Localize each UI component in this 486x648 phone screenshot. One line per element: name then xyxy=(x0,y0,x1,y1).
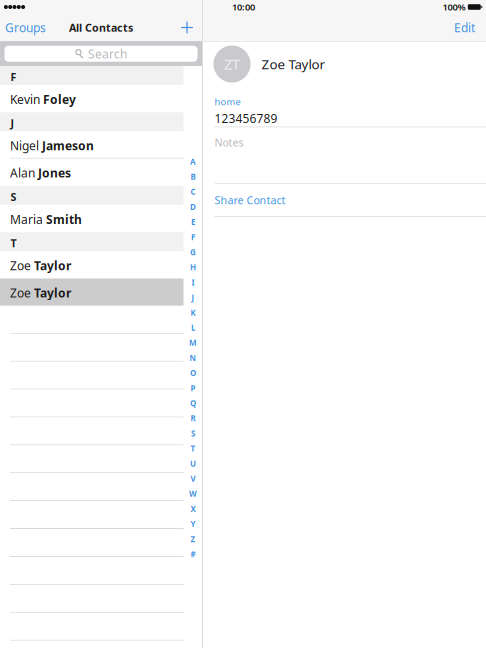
staticText: B xyxy=(190,171,195,182)
staticText: 100% xyxy=(442,1,465,13)
staticText: U xyxy=(190,458,196,469)
staticText: V xyxy=(190,473,195,484)
button[interactable]: Nigel xyxy=(0,131,183,159)
staticText: Kevin xyxy=(10,91,40,107)
staticText: S xyxy=(10,190,16,204)
staticText: Taylor xyxy=(34,285,71,301)
staticText: Zoe Taylor xyxy=(261,55,325,73)
staticText: Taylor xyxy=(34,258,71,273)
staticText: Nigel xyxy=(10,138,39,154)
button[interactable]: Groups xyxy=(0,14,46,41)
staticText: J xyxy=(10,116,14,130)
staticText: Zoe xyxy=(10,285,31,301)
staticText: Zoe xyxy=(10,258,31,273)
staticText: Jones xyxy=(38,165,71,181)
staticText: Search xyxy=(88,46,127,62)
staticText: H xyxy=(190,262,196,272)
staticText: I xyxy=(191,277,194,288)
staticText: L xyxy=(191,322,195,333)
staticText: Alan xyxy=(10,165,35,181)
staticText: N xyxy=(189,352,196,363)
staticText: Groups xyxy=(5,19,46,35)
staticText: F xyxy=(191,232,195,242)
staticText: Smith xyxy=(46,211,82,227)
staticText: R xyxy=(190,413,195,423)
button[interactable]: Kevin xyxy=(0,85,183,112)
staticText: Edit xyxy=(454,19,475,35)
staticText: Q xyxy=(190,398,196,408)
staticText: home xyxy=(214,95,240,108)
staticText: J xyxy=(191,292,194,303)
staticText: C xyxy=(190,186,195,197)
staticText: All Contacts xyxy=(69,20,133,35)
staticText: S xyxy=(191,428,195,439)
staticText: X xyxy=(190,503,195,514)
staticText: P xyxy=(190,383,195,393)
staticText: Foley xyxy=(43,91,76,107)
button[interactable]: Zoe xyxy=(0,278,183,306)
staticText: Y xyxy=(190,519,195,529)
staticText: ZT xyxy=(224,54,240,74)
staticText: A xyxy=(190,156,196,167)
staticText: Z xyxy=(190,534,195,544)
staticText: M xyxy=(189,337,197,348)
staticText: K xyxy=(190,307,195,318)
button[interactable]: Share Contact xyxy=(203,184,486,216)
staticText: Notes xyxy=(214,135,243,149)
staticText: Maria xyxy=(10,211,43,227)
staticText: Jameson xyxy=(42,138,94,154)
staticText: 123456789 xyxy=(214,110,277,126)
staticText: D xyxy=(190,201,196,212)
button[interactable]: Alan xyxy=(0,159,183,186)
staticText: T xyxy=(10,236,16,250)
button[interactable]: Section index xyxy=(186,154,200,562)
button[interactable]: Edit xyxy=(454,14,486,41)
button[interactable]: Maria xyxy=(0,205,183,232)
staticText: 10:00 xyxy=(232,1,255,13)
staticText: Share Contact xyxy=(214,193,285,207)
button[interactable]: Add contact xyxy=(180,14,202,41)
staticText: O xyxy=(190,368,196,378)
staticText: F xyxy=(10,70,16,84)
staticText: T xyxy=(190,443,195,454)
staticText: G xyxy=(190,247,196,257)
staticText: W xyxy=(189,488,197,499)
staticText: E xyxy=(191,217,195,227)
staticText: # xyxy=(190,549,195,559)
button[interactable]: Zoe xyxy=(0,251,183,278)
